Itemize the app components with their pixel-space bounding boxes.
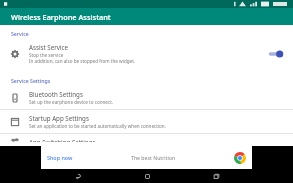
staticText: Bluetooth Settings — [29, 90, 83, 98]
staticText: Shop now — [47, 154, 73, 161]
button[interactable]: Home — [136, 169, 158, 183]
staticText: Startup App Settings — [29, 114, 89, 122]
staticText: Stop the service — [29, 52, 64, 58]
staticText: In addition, can also be stopped from th… — [29, 58, 136, 64]
button[interactable]: Bluetooth Settings — [0, 86, 293, 109]
button[interactable]: Startup App Settings — [0, 110, 293, 133]
staticText: Set up the earphone device to connect. — [29, 99, 114, 105]
staticText: Service Settings — [11, 77, 51, 84]
staticText: App Switching Settings — [29, 138, 96, 142]
staticText: Service — [11, 30, 29, 37]
button[interactable]: Assist Service — [0, 39, 293, 68]
staticText: Assist Service — [29, 43, 68, 51]
staticText: The best Nutrition — [131, 154, 176, 161]
button[interactable]: Assist Service toggle — [265, 47, 285, 61]
staticText: Set an application to be started automat… — [29, 123, 166, 129]
button[interactable]: Shop now — [41, 146, 252, 169]
button[interactable]: Recents — [205, 169, 227, 183]
button[interactable]: Back — [67, 169, 89, 183]
staticText: Wireless Earphone Assistant — [11, 12, 111, 22]
button[interactable]: App Switching Settings — [0, 134, 293, 146]
